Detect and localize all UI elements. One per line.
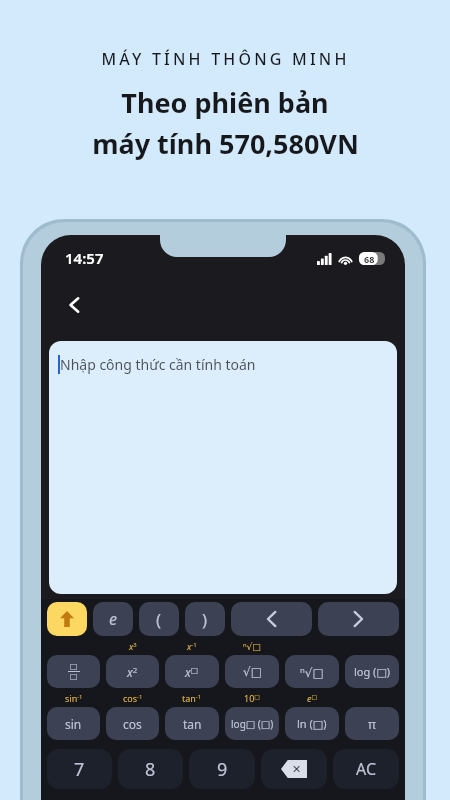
- staticText: log (□): [354, 664, 391, 679]
- button[interactable]: 9: [189, 749, 255, 789]
- button[interactable]: π: [345, 707, 399, 740]
- button[interactable]: e: [93, 602, 133, 636]
- staticText: x2: [127, 664, 138, 680]
- button[interactable]: x2: [106, 655, 159, 688]
- staticText: ⁿ√□: [300, 664, 324, 680]
- button[interactable]: ⁿ√□: [285, 655, 339, 688]
- staticText: cos-1: [123, 692, 143, 704]
- staticText: 10□: [244, 692, 260, 704]
- staticText: log□ (□): [231, 717, 274, 731]
- staticText: 14:57: [65, 248, 104, 268]
- staticText: x-1: [187, 640, 197, 652]
- button[interactable]: 7: [47, 749, 112, 789]
- button[interactable]: ): [185, 602, 225, 636]
- button[interactable]: log (□): [345, 655, 399, 688]
- button[interactable]: sin: [47, 707, 100, 740]
- button[interactable]: x□: [165, 655, 219, 688]
- button[interactable]: Left: [231, 602, 312, 636]
- staticText: ✕: [292, 763, 302, 776]
- staticText: sin: [65, 716, 82, 732]
- staticText: (: [156, 608, 162, 631]
- staticText: Theo phiên bản: [121, 84, 329, 121]
- button[interactable]: (: [139, 602, 179, 636]
- button[interactable]: □: [47, 655, 100, 688]
- button[interactable]: Right: [318, 602, 399, 636]
- button[interactable]: tan: [165, 707, 219, 740]
- staticText: tan-1: [182, 692, 202, 704]
- staticText: □: [70, 672, 78, 681]
- button[interactable]: Back: [51, 281, 99, 329]
- staticText: máy tính 570,580VN: [92, 125, 359, 162]
- staticText: e□: [307, 692, 318, 704]
- button[interactable]: log□ (□): [225, 707, 279, 740]
- staticText: x3: [129, 640, 137, 652]
- staticText: π: [368, 716, 376, 732]
- button[interactable]: AC: [333, 749, 399, 789]
- staticText: AC: [356, 758, 377, 780]
- button[interactable]: 8: [118, 749, 183, 789]
- staticText: √□: [243, 665, 262, 679]
- button[interactable]: √□: [225, 655, 279, 688]
- staticText: ln (□): [297, 716, 327, 731]
- staticText: □: [70, 662, 78, 671]
- button[interactable]: cos: [106, 707, 159, 740]
- staticText: x□: [185, 664, 199, 680]
- button[interactable]: Delete: [261, 749, 327, 789]
- staticText: MÁY TÍNH THÔNG MINH: [101, 48, 350, 70]
- staticText: ): [202, 608, 208, 631]
- staticText: 8: [145, 757, 156, 782]
- staticText: 9: [217, 757, 228, 782]
- staticText: tan: [183, 716, 202, 732]
- button[interactable]: ln (□): [285, 707, 339, 740]
- staticText: 68: [364, 253, 375, 265]
- staticText: sin-1: [65, 692, 83, 704]
- staticText: ⁿ√□: [243, 640, 261, 652]
- staticText: e: [109, 608, 117, 630]
- staticText: 7: [74, 757, 85, 782]
- staticText: cos: [123, 716, 142, 732]
- button[interactable]: Nhập công thức cần tính toán: [49, 341, 397, 594]
- staticText: Nhập công thức cần tính toán: [60, 355, 256, 374]
- button[interactable]: Shift: [47, 602, 87, 636]
